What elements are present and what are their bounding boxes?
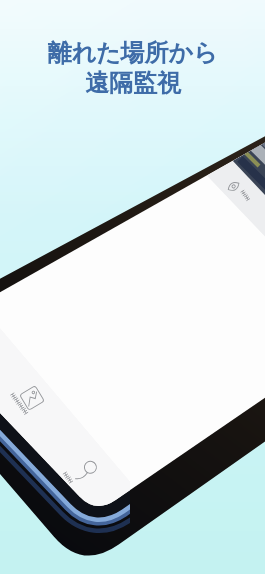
staticText: 離れた場所から: [47, 38, 218, 68]
staticText: 遠隔監視: [85, 68, 181, 98]
